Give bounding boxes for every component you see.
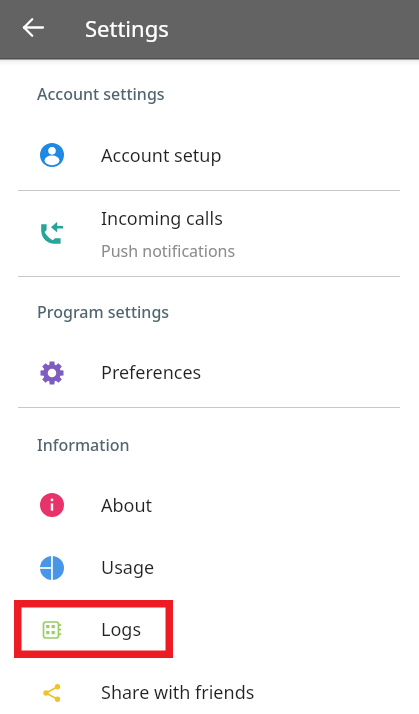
staticText: Information [37, 434, 130, 456]
staticText: About [101, 493, 153, 518]
staticText: Logs [101, 617, 142, 642]
button[interactable]: Usage [0, 533, 419, 596]
button[interactable]: Incoming calls [0, 191, 419, 276]
button[interactable]: Navigate up [10, 5, 58, 53]
staticText: Account setup [101, 143, 222, 168]
staticText: Share with friends [101, 680, 255, 705]
staticText: Usage [101, 555, 155, 580]
button[interactable]: Logs [0, 596, 419, 659]
staticText: Account settings [37, 83, 165, 105]
staticText: Preferences [101, 360, 202, 385]
staticText: Settings [85, 13, 169, 43]
button[interactable]: About [0, 471, 419, 533]
staticText: Push notifications [101, 240, 236, 262]
staticText: Incoming calls [101, 206, 223, 231]
button[interactable]: Account setup [0, 120, 419, 190]
staticText: Program settings [37, 301, 170, 323]
button[interactable]: Share with friends [0, 659, 419, 714]
button[interactable]: Preferences [0, 338, 419, 407]
